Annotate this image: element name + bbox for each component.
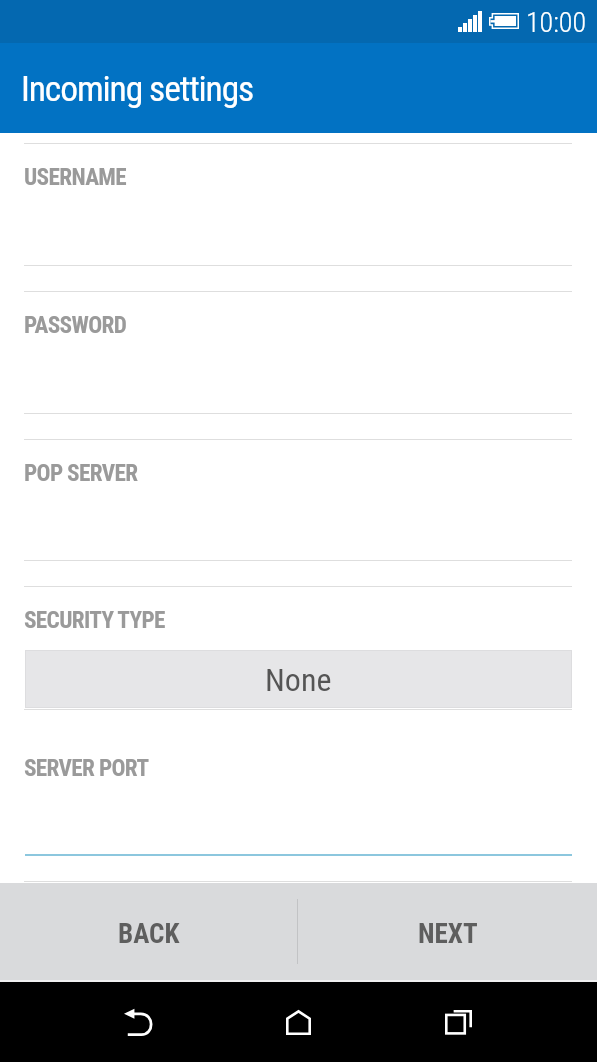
- staticText: Incoming settings: [21, 68, 254, 110]
- other: Battery full: [489, 13, 519, 29]
- button[interactable]: None: [25, 650, 572, 708]
- staticText: None: [265, 661, 332, 699]
- staticText: 10:00: [526, 6, 587, 39]
- staticText: SECURITY TYPE: [24, 606, 165, 633]
- button[interactable]: [0, 144, 597, 265]
- button[interactable]: BACK: [0, 883, 298, 982]
- staticText: PASSWORD: [24, 311, 127, 338]
- staticText: POP SERVER: [24, 459, 138, 486]
- button[interactable]: Back: [108, 982, 168, 1062]
- button[interactable]: [0, 440, 597, 560]
- button[interactable]: [0, 710, 597, 855]
- other: Signal strength: [458, 11, 482, 32]
- staticText: SERVER PORT: [24, 754, 149, 781]
- button[interactable]: NEXT: [298, 883, 597, 982]
- staticText: NEXT: [418, 918, 478, 950]
- button[interactable]: Home: [268, 982, 328, 1062]
- button[interactable]: Recent apps: [428, 983, 488, 1062]
- staticText: BACK: [118, 918, 180, 950]
- staticText: USERNAME: [24, 163, 127, 190]
- button[interactable]: [0, 292, 597, 413]
